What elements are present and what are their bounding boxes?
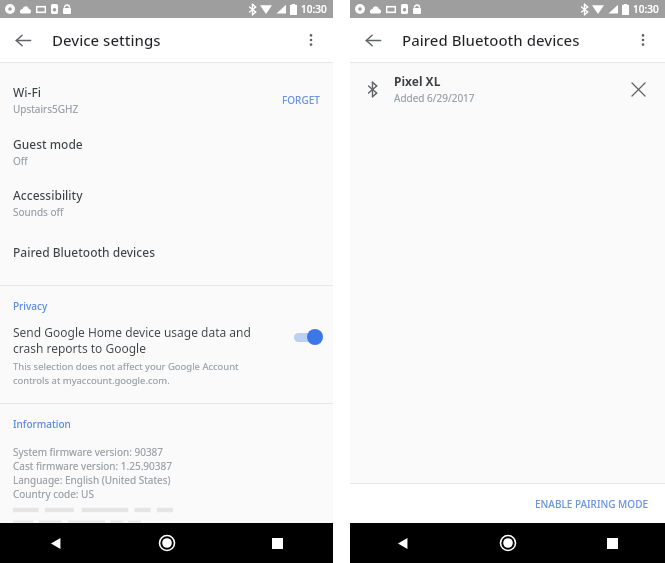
staticText: Cast firmware version: 1.25.90387 xyxy=(13,459,172,473)
button[interactable]: More options xyxy=(629,26,657,54)
staticText: Device settings xyxy=(52,30,161,50)
button[interactable]: Back xyxy=(350,523,455,563)
button[interactable]: More options xyxy=(297,26,325,54)
staticText: Privacy xyxy=(13,299,48,313)
button[interactable]: Send Google Home device usage data and c… xyxy=(0,324,333,387)
staticText: 10:30 xyxy=(633,2,659,16)
button[interactable]: Paired Bluetooth devices xyxy=(0,239,333,265)
button[interactable]: FORGET xyxy=(277,89,325,111)
staticText: Sounds off xyxy=(13,205,64,219)
staticText: Off xyxy=(13,154,28,168)
staticText: Guest mode xyxy=(13,136,83,152)
staticText: Pixel XL xyxy=(394,73,441,89)
button[interactable]: Guest mode xyxy=(0,132,333,172)
staticText: Upstairs5GHZ xyxy=(13,102,79,116)
button[interactable]: Accessibility xyxy=(0,183,333,223)
staticText: Accessibility xyxy=(13,187,83,203)
staticText: FORGET xyxy=(282,93,320,107)
button[interactable]: Back xyxy=(8,25,38,55)
button[interactable]: Back xyxy=(358,25,388,55)
staticText: This selection does not affect your Goog… xyxy=(13,360,239,387)
button[interactable]: Home xyxy=(111,523,222,563)
staticText: ENABLE PAIRING MODE xyxy=(535,497,649,511)
button[interactable]: Pixel XL xyxy=(350,63,665,115)
staticText: Paired Bluetooth devices xyxy=(13,244,155,260)
button[interactable]: Recent apps xyxy=(560,523,665,563)
button[interactable]: Remove device xyxy=(625,76,651,102)
staticText: Information xyxy=(13,417,71,431)
staticText: Country code: US xyxy=(13,487,94,501)
staticText: Added 6/29/2017 xyxy=(394,91,475,105)
button[interactable]: Home xyxy=(455,523,560,563)
staticText: Wi-Fi xyxy=(13,84,41,100)
staticText: Language: English (United States) xyxy=(13,473,171,487)
button[interactable]: Toggle xyxy=(291,328,323,346)
button[interactable]: Back xyxy=(0,523,111,563)
button[interactable]: ENABLE PAIRING MODE xyxy=(529,492,655,516)
button[interactable]: Wi-Fi xyxy=(0,79,333,121)
button[interactable]: Recent apps xyxy=(222,523,333,563)
staticText: 10:30 xyxy=(301,2,327,16)
staticText: Paired Bluetooth devices xyxy=(402,30,580,50)
staticText: System firmware version: 90387 xyxy=(13,445,164,459)
staticText: Send Google Home device usage data and c… xyxy=(13,324,251,357)
